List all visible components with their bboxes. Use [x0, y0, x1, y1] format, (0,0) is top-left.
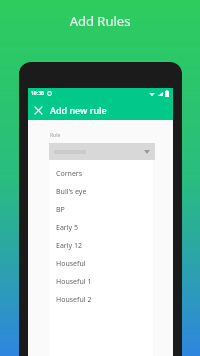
staticText: Houseful: [56, 259, 86, 269]
button[interactable]: BP: [50, 201, 153, 219]
staticText: Add Rules: [0, 12, 200, 30]
button[interactable]: Close: [31, 103, 45, 117]
button[interactable]: [49, 143, 155, 160]
staticText: 10:36: [31, 90, 44, 97]
button[interactable]: Houseful 2: [50, 291, 153, 309]
staticText: Early 12: [56, 241, 82, 251]
staticText: Bull's eye: [56, 187, 87, 197]
staticText: BP: [56, 205, 65, 215]
button[interactable]: Corners: [50, 165, 153, 183]
staticText: Rule: [50, 132, 61, 139]
staticText: Early 5: [56, 223, 78, 233]
staticText: Houseful 2: [56, 295, 92, 305]
button[interactable]: Early 5: [50, 219, 153, 237]
button[interactable]: Bull's eye: [50, 183, 153, 201]
button[interactable]: Houseful 1: [50, 273, 153, 291]
button[interactable]: Early 12: [50, 237, 153, 255]
staticText: Add new rule: [50, 104, 107, 116]
staticText: Houseful 1: [56, 277, 92, 287]
button[interactable]: Houseful: [50, 255, 153, 273]
staticText: Corners: [56, 169, 83, 179]
